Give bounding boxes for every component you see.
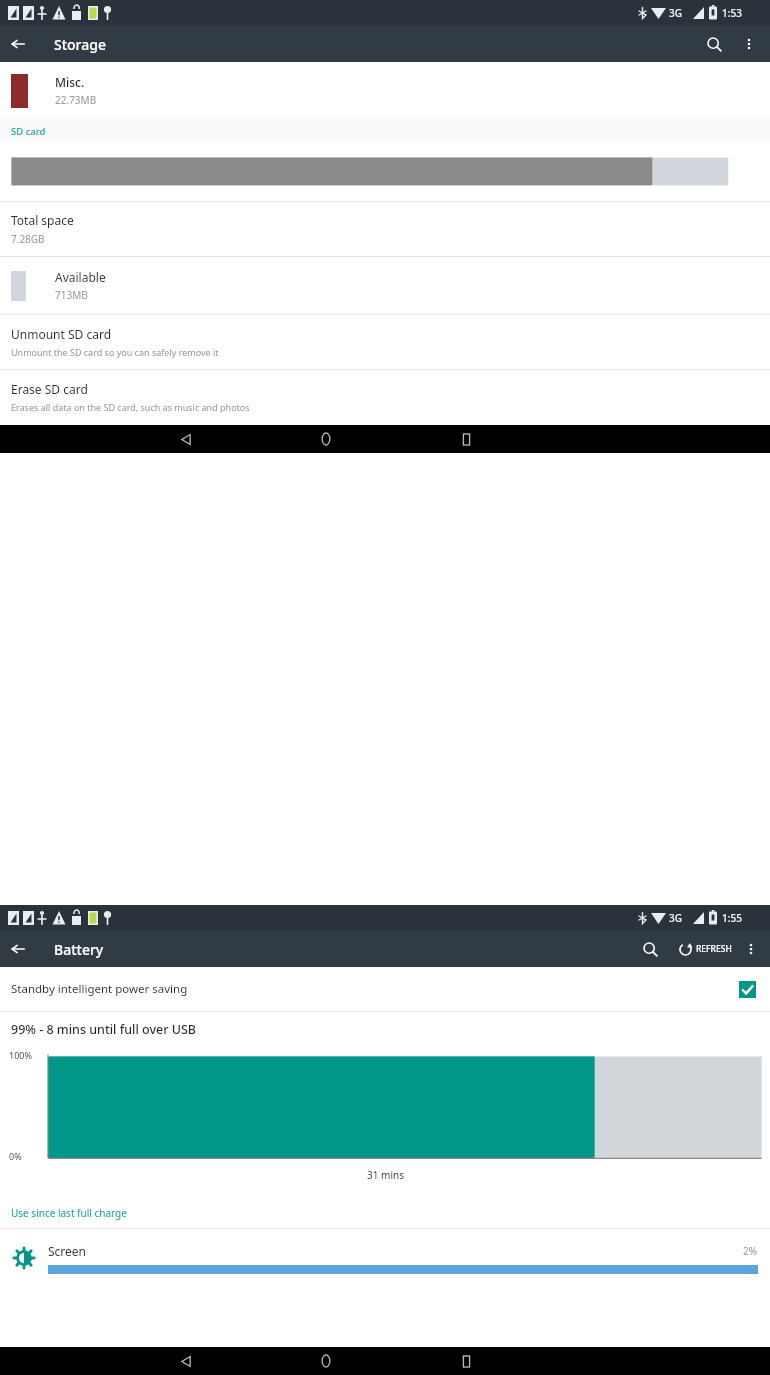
button[interactable]: Recents	[452, 425, 480, 453]
button[interactable]: Back	[0, 26, 36, 62]
staticText: Unmount the SD card so you can safely re…	[11, 346, 219, 358]
button[interactable]: Back	[0, 931, 36, 967]
staticText: 1:55	[722, 911, 742, 925]
staticText: 3G	[669, 911, 682, 925]
button[interactable]: Home	[312, 425, 340, 453]
staticText: Standby intelligent power saving	[11, 981, 739, 997]
staticText: 2%	[743, 1244, 758, 1258]
staticText: 99% - 8 mins until full over USB	[11, 1021, 196, 1038]
staticText: Screen	[48, 1243, 743, 1259]
button[interactable]: Screen	[0, 1229, 770, 1287]
staticText: 7.28GB	[11, 232, 45, 246]
button[interactable]: Available	[0, 257, 770, 314]
button[interactable]: Unmount SD card	[0, 315, 770, 369]
button[interactable]: More options	[732, 27, 766, 61]
button[interactable]: Back	[172, 1347, 200, 1375]
staticText: REFRESH	[696, 943, 732, 955]
staticText: 22.73MB	[55, 93, 97, 107]
button[interactable]: Home	[312, 1347, 340, 1375]
staticText: SD card	[11, 125, 46, 138]
staticText: Unmount SD card	[11, 326, 112, 342]
button[interactable]: Recents	[452, 1347, 480, 1375]
button[interactable]: Search	[632, 931, 668, 967]
staticText: 3G	[669, 6, 682, 20]
staticText: Total space	[11, 212, 74, 228]
button[interactable]: Misc.	[0, 62, 770, 119]
staticText: Use since last full charge	[11, 1206, 127, 1220]
button[interactable]: Search	[696, 26, 732, 62]
button[interactable]: Standby intelligent power saving toggle	[739, 981, 756, 998]
staticText: Battery	[54, 940, 104, 959]
button[interactable]: Total space	[0, 202, 770, 256]
staticText: 31 mins	[367, 1168, 404, 1182]
staticText: Storage	[54, 35, 106, 54]
staticText: Misc.	[55, 74, 85, 90]
staticText: Erase SD card	[11, 381, 88, 397]
button[interactable]: More options	[736, 934, 766, 964]
staticText: 713MB	[55, 288, 88, 302]
button[interactable]: Standby intelligent power saving	[0, 967, 770, 1011]
staticText: 0%	[9, 1150, 22, 1162]
button[interactable]: REFRESH	[674, 931, 736, 967]
staticText: 100%	[9, 1049, 32, 1061]
staticText: 1:53	[722, 6, 742, 20]
button[interactable]: Erase SD card	[0, 370, 770, 424]
staticText: Erases all data on the SD card, such as …	[11, 401, 250, 413]
button[interactable]: Back	[172, 425, 200, 453]
staticText: Available	[55, 269, 106, 285]
